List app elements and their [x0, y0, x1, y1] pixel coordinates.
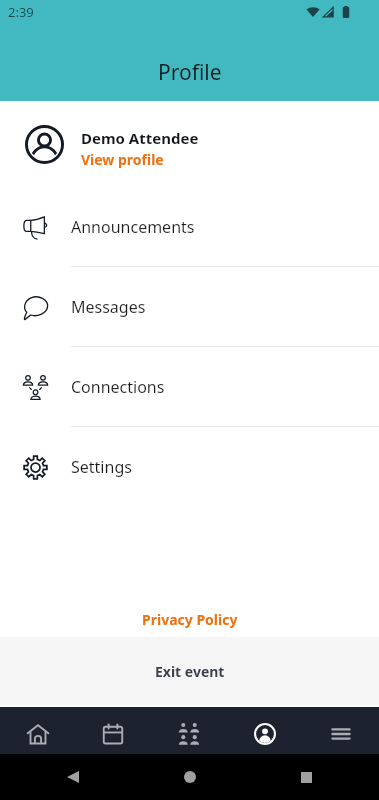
button[interactable]: Exit event [0, 637, 379, 705]
button[interactable]: Settings [0, 427, 379, 507]
staticText: View profile [81, 150, 164, 169]
button[interactable]: Schedule [75, 707, 151, 754]
button[interactable]: Privacy Policy [0, 602, 379, 637]
staticText: Profile [158, 58, 222, 87]
staticText: Demo Attendee [81, 128, 199, 148]
staticText: Privacy Policy [142, 610, 238, 629]
button[interactable]: Profile [227, 707, 303, 754]
staticText: Connections [71, 376, 165, 398]
button[interactable]: Home [0, 707, 75, 754]
button[interactable]: Back [60, 764, 86, 790]
button[interactable]: Home [177, 764, 203, 790]
staticText: Exit event [155, 662, 225, 681]
button[interactable]: Demo Attendee [0, 101, 379, 187]
staticText: Settings [71, 456, 132, 478]
staticText: Messages [71, 296, 146, 318]
button[interactable]: Announcements [0, 187, 379, 267]
button[interactable]: Menu [303, 707, 379, 754]
button[interactable]: Attendees [151, 707, 227, 754]
staticText: 2:39 [8, 3, 34, 21]
button[interactable]: Messages [0, 267, 379, 347]
button[interactable]: Connections [0, 347, 379, 427]
staticText: Announcements [71, 216, 195, 238]
button[interactable]: Recents [293, 764, 319, 790]
